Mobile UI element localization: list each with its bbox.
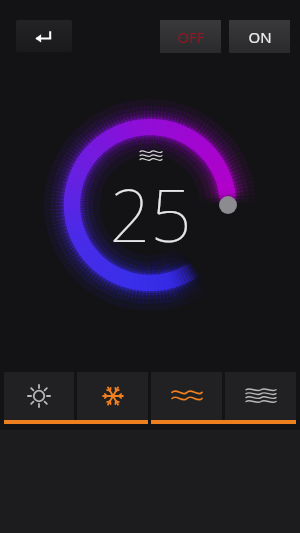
- button[interactable]: ON: [229, 20, 290, 53]
- button[interactable]: Fan low: [151, 372, 222, 420]
- button[interactable]: Cool: [77, 372, 148, 420]
- button[interactable]: Heat: [4, 372, 74, 420]
- button[interactable]: Fan high: [225, 372, 296, 420]
- button[interactable]: Back: [16, 20, 72, 52]
- button[interactable]: [0, 72, 300, 372]
- staticText: ON: [248, 27, 272, 47]
- staticText: 25: [109, 165, 192, 263]
- staticText: OFF: [177, 27, 205, 47]
- button[interactable]: OFF: [160, 20, 221, 53]
